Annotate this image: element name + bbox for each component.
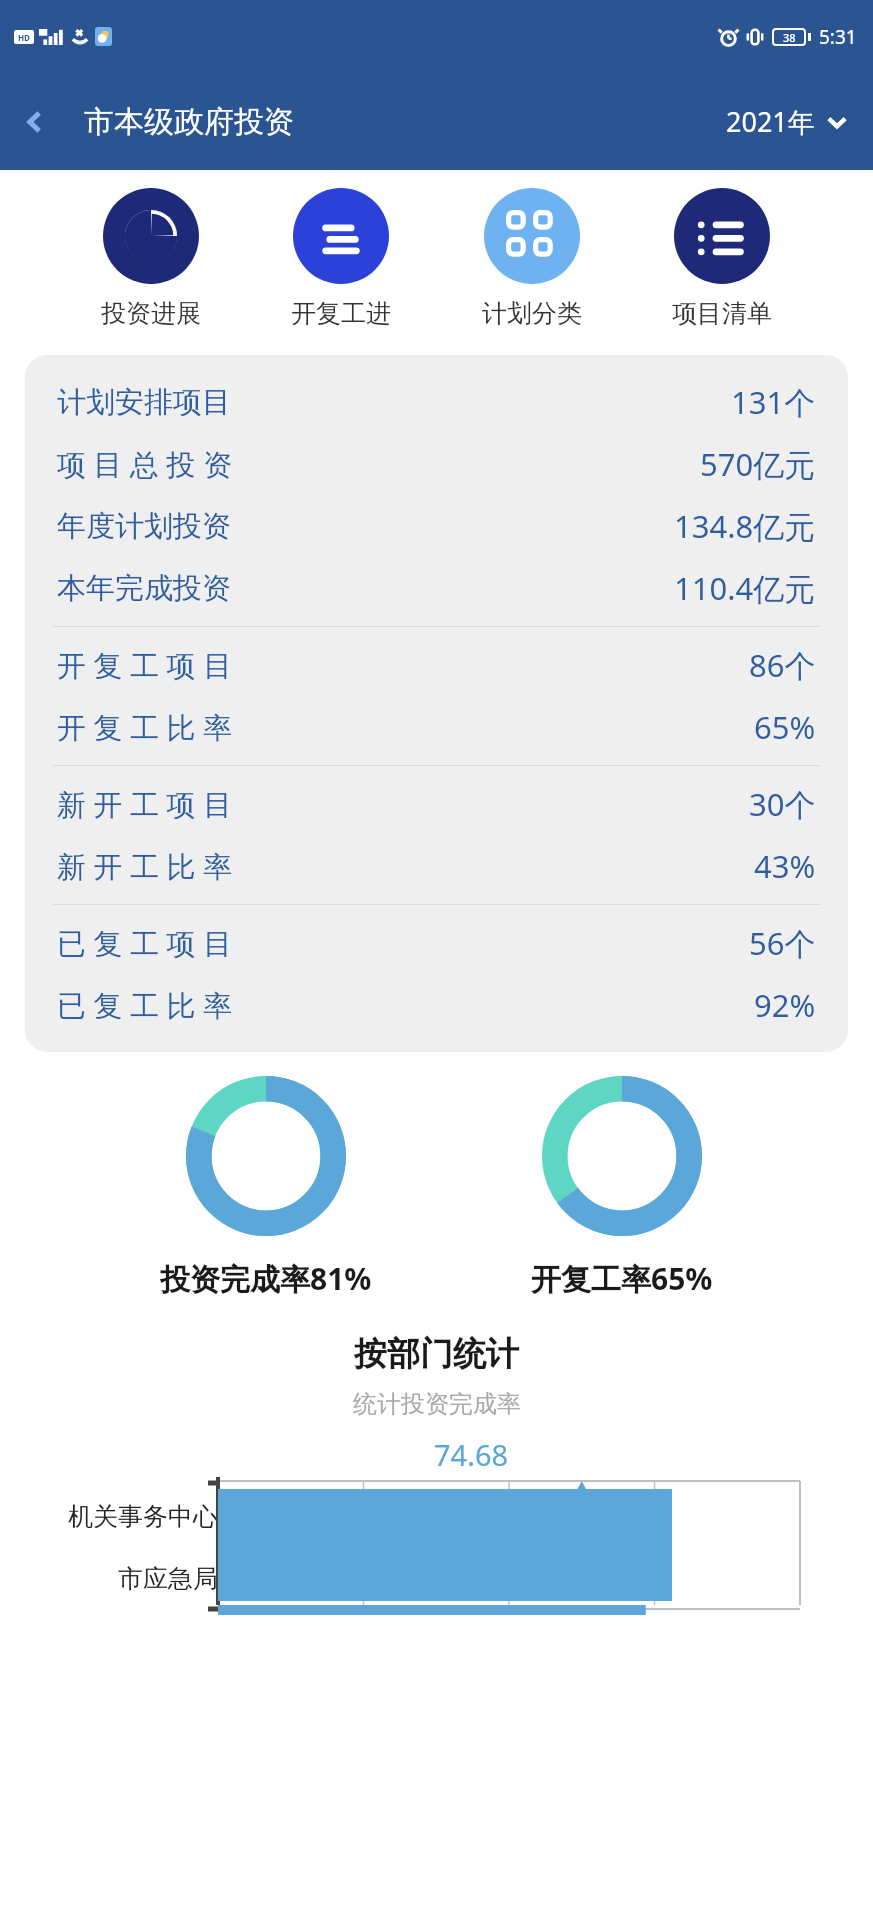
staticText: 56个: [749, 922, 816, 964]
button[interactable]: 开复工进: [287, 188, 395, 329]
button[interactable]: 新 开 工 比 率: [25, 835, 848, 897]
staticText: 开 复 工 比 率: [57, 707, 233, 747]
staticText: 开复工率65%: [531, 1258, 713, 1299]
staticText: 项目清单: [672, 298, 772, 329]
staticText: 开复工进: [291, 298, 391, 329]
staticText: 74.68: [434, 1435, 509, 1474]
staticText: 134.8亿元: [674, 505, 816, 547]
button[interactable]: 2021年: [720, 97, 855, 146]
staticText: 投资完成率81%: [160, 1258, 372, 1299]
staticText: 新 开 工 比 率: [57, 846, 233, 886]
staticText: 年度计划投资: [57, 508, 231, 545]
staticText: 开 复 工 项 目: [57, 645, 233, 685]
button[interactable]: 计划分类: [478, 188, 586, 329]
button[interactable]: 计划安排项目: [25, 371, 848, 433]
staticText: HD: [18, 32, 30, 43]
button[interactable]: Back: [14, 103, 56, 141]
button[interactable]: 开复工率65%: [531, 1076, 713, 1299]
button[interactable]: 已 复 工 项 目: [25, 912, 848, 974]
staticText: 新 开 工 项 目: [57, 784, 233, 824]
button[interactable]: 项目清单: [668, 188, 776, 329]
staticText: 已 复 工 比 率: [57, 985, 233, 1025]
staticText: 92%: [754, 984, 816, 1026]
staticText: 43%: [754, 845, 816, 887]
staticText: 570亿元: [700, 443, 816, 485]
staticText: 计划安排项目: [57, 384, 231, 421]
staticText: 计划分类: [482, 298, 582, 329]
staticText: 本年完成投资: [57, 570, 231, 607]
staticText: 按部门统计: [354, 1333, 519, 1375]
button[interactable]: 已 复 工 比 率: [25, 974, 848, 1036]
staticText: 机关事务中心: [68, 1501, 218, 1532]
button[interactable]: 项 目 总 投 资: [25, 433, 848, 495]
staticText: 市本级政府投资: [84, 103, 294, 141]
button[interactable]: 投资进展: [97, 188, 205, 329]
staticText: 65%: [754, 706, 816, 748]
staticText: 30个: [749, 783, 816, 825]
button[interactable]: 开 复 工 比 率: [25, 696, 848, 758]
button[interactable]: 新 开 工 项 目: [25, 773, 848, 835]
staticText: 5:31: [819, 24, 857, 50]
staticText: 投资进展: [101, 298, 201, 329]
staticText: 110.4亿元: [674, 567, 816, 609]
button[interactable]: 本年完成投资: [25, 557, 848, 619]
button[interactable]: 年度计划投资: [25, 495, 848, 557]
staticText: 131个: [731, 381, 816, 423]
staticText: 统计投资完成率: [353, 1389, 521, 1419]
staticText: 市应急局: [118, 1563, 218, 1594]
staticText: 86个: [749, 644, 816, 686]
staticText: 38: [783, 30, 796, 44]
button[interactable]: 投资完成率81%: [160, 1076, 372, 1299]
button[interactable]: 开 复 工 项 目: [25, 634, 848, 696]
staticText: 已 复 工 项 目: [57, 923, 233, 963]
staticText: 2021年: [726, 103, 815, 140]
staticText: 项 目 总 投 资: [57, 444, 233, 484]
